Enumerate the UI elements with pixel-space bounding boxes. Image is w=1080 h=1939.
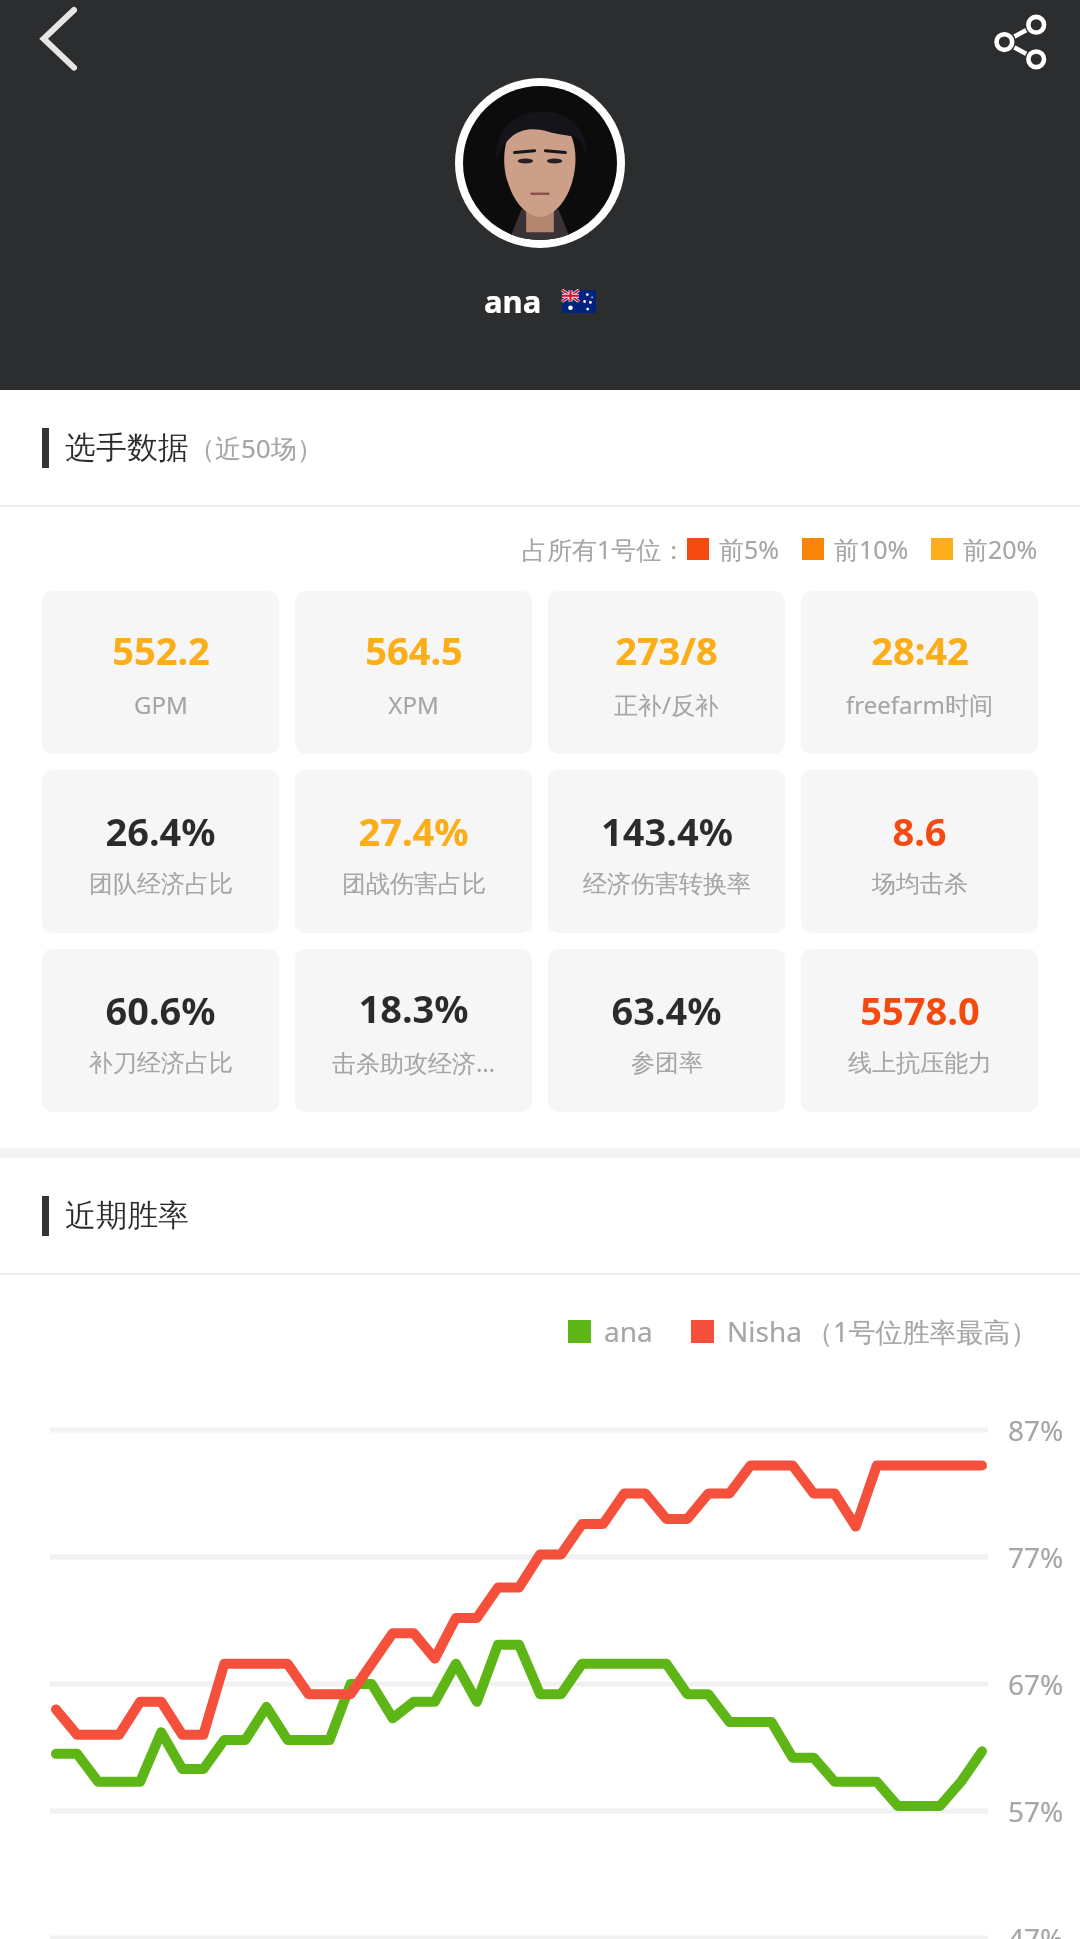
staticText: 57%: [1008, 1792, 1064, 1830]
staticText: 经济伤害转换率: [583, 869, 751, 899]
button[interactable]: 27.4%: [295, 770, 532, 933]
staticText: ana: [604, 1312, 653, 1350]
button[interactable]: 8.6: [801, 770, 1038, 933]
staticText: 团队经济占比: [89, 869, 233, 899]
staticText: 27.4%: [358, 805, 469, 857]
staticText: 前5%: [719, 532, 780, 566]
button[interactable]: 143.4%: [548, 770, 785, 933]
staticText: 273/8: [615, 624, 718, 676]
staticText: 击杀助攻经济…: [332, 1046, 495, 1079]
staticText: （近50场）: [189, 430, 323, 466]
staticText: 26.4%: [105, 805, 216, 857]
staticText: （1号位胜率最高）: [806, 1313, 1038, 1350]
staticText: 场均击杀: [872, 869, 968, 899]
button[interactable]: 564.5: [295, 591, 532, 754]
staticText: 近期胜率: [65, 1196, 189, 1235]
button[interactable]: Back: [18, 2, 98, 82]
staticText: 60.6%: [105, 984, 216, 1036]
button[interactable]: 63.4%: [548, 949, 785, 1112]
staticText: 28:42: [871, 624, 969, 676]
staticText: 正补/反补: [614, 688, 719, 721]
button[interactable]: 552.2: [42, 591, 279, 754]
staticText: 67%: [1008, 1665, 1064, 1703]
staticText: 8.6: [892, 805, 947, 857]
staticText: 补刀经济占比: [89, 1048, 233, 1078]
button[interactable]: 18.3%: [295, 949, 532, 1112]
staticText: 18.3%: [358, 982, 469, 1034]
staticText: XPM: [388, 688, 439, 721]
staticText: 87%: [1008, 1411, 1064, 1449]
staticText: 参团率: [631, 1048, 703, 1078]
staticText: GPM: [134, 688, 188, 721]
staticText: 前20%: [963, 532, 1038, 566]
staticText: 5578.0: [860, 984, 980, 1036]
staticText: freefarm时间: [846, 688, 993, 721]
button[interactable]: 60.6%: [42, 949, 279, 1112]
staticText: 前10%: [834, 532, 909, 566]
staticText: 选手数据: [65, 428, 189, 467]
staticText: 143.4%: [601, 805, 733, 857]
staticText: 552.2: [112, 624, 210, 676]
staticText: 77%: [1008, 1538, 1064, 1576]
staticText: 线上抗压能力: [848, 1048, 992, 1078]
staticText: 564.5: [365, 624, 463, 676]
staticText: 63.4%: [611, 984, 722, 1036]
staticText: 团战伤害占比: [342, 869, 486, 899]
button[interactable]: Share: [980, 2, 1060, 82]
button[interactable]: 5578.0: [801, 949, 1038, 1112]
button[interactable]: 26.4%: [42, 770, 279, 933]
button[interactable]: 28:42: [801, 591, 1038, 754]
staticText: ana: [484, 280, 542, 322]
staticText: 占所有1号位：: [522, 532, 687, 566]
staticText: Nisha: [727, 1312, 802, 1350]
staticText: 47%: [1008, 1919, 1064, 1939]
button[interactable]: 273/8: [548, 591, 785, 754]
